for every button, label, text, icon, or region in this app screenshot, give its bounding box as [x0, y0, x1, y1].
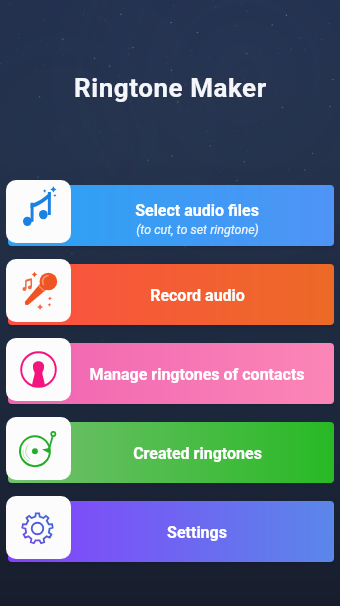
- button[interactable]: Manage ringtones of contacts: [6, 338, 71, 401]
- button[interactable]: Select audio files: [6, 180, 71, 243]
- staticText: Record audio: [150, 286, 245, 305]
- staticText: Select audio files: [135, 201, 259, 220]
- button[interactable]: Record audio: [6, 259, 71, 322]
- button[interactable]: Record audio: [8, 264, 334, 325]
- staticText: Settings: [167, 523, 227, 542]
- staticText: Ringtone Maker: [74, 73, 267, 103]
- button[interactable]: Manage ringtones of contacts: [8, 343, 334, 404]
- button[interactable]: Settings: [8, 501, 334, 562]
- staticText: Manage ringtones of contacts: [89, 365, 305, 384]
- button[interactable]: Select audio files: [8, 185, 334, 246]
- staticText: (to cut, to set ringtone): [136, 222, 259, 237]
- staticText: Created ringtones: [133, 444, 262, 463]
- other: Select audio files: [23, 189, 54, 226]
- other: Settings: [21, 511, 54, 546]
- button[interactable]: Created ringtones: [6, 417, 71, 480]
- button[interactable]: Created ringtones: [8, 422, 334, 483]
- button[interactable]: Settings: [6, 496, 71, 559]
- other: Created ringtones: [20, 431, 56, 466]
- other: Record audio: [21, 273, 57, 309]
- other: Manage ringtones of contacts: [20, 351, 57, 388]
